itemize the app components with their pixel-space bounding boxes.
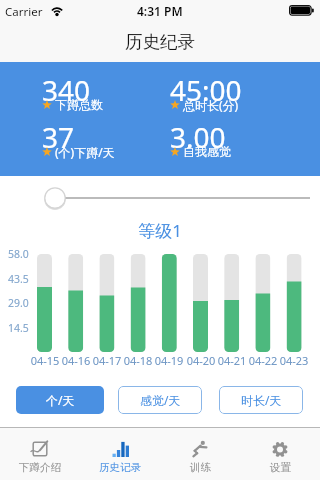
staticText: 04-23 [278,353,310,368]
button[interactable]: 个/天 [16,386,104,414]
staticText: 04-17 [91,353,123,368]
staticText: 04-19 [153,353,185,368]
staticText: 340 [42,71,91,109]
button[interactable]: 下蹲介绍 [0,427,80,480]
button[interactable]: 设置 [240,427,320,480]
staticText: 时长/天 [241,392,282,408]
staticText: 4:31 PM [137,3,183,19]
staticText: 感觉/天 [140,392,181,408]
staticText: 历史纪录 [125,31,195,53]
staticText: 14.5 [8,321,29,335]
staticText: 3.00 [170,118,226,156]
staticText: 训练 [190,461,211,474]
staticText: 自我感觉 [183,144,231,159]
staticText: 37 [42,118,75,156]
staticText: 等级1 [0,219,320,242]
staticText: 29.0 [8,296,29,310]
staticText: 下蹲总数 [55,97,103,112]
staticText: (个)下蹲/天 [55,144,115,160]
button[interactable]: 历史记录 [80,427,160,480]
staticText: 04-18 [122,353,154,368]
staticText: 个/天 [46,392,75,408]
button[interactable]: 感觉/天 [118,386,202,414]
staticText: 04-22 [247,353,279,368]
staticText: 设置 [270,461,291,474]
staticText: 45:00 [170,71,242,109]
staticText: 04-16 [60,353,92,368]
staticText: 58.0 [8,247,29,261]
staticText: 历史记录 [99,461,141,474]
staticText: Carrier [5,4,43,20]
staticText: 04-21 [216,353,248,368]
staticText: 下蹲介绍 [19,461,61,474]
button[interactable]: 时长/天 [219,386,303,414]
button[interactable]: 训练 [160,427,240,480]
staticText: 总时长(分) [183,97,239,113]
staticText: 43.5 [8,272,29,286]
staticText: 04-15 [29,353,61,368]
staticText: 04-20 [185,353,217,368]
